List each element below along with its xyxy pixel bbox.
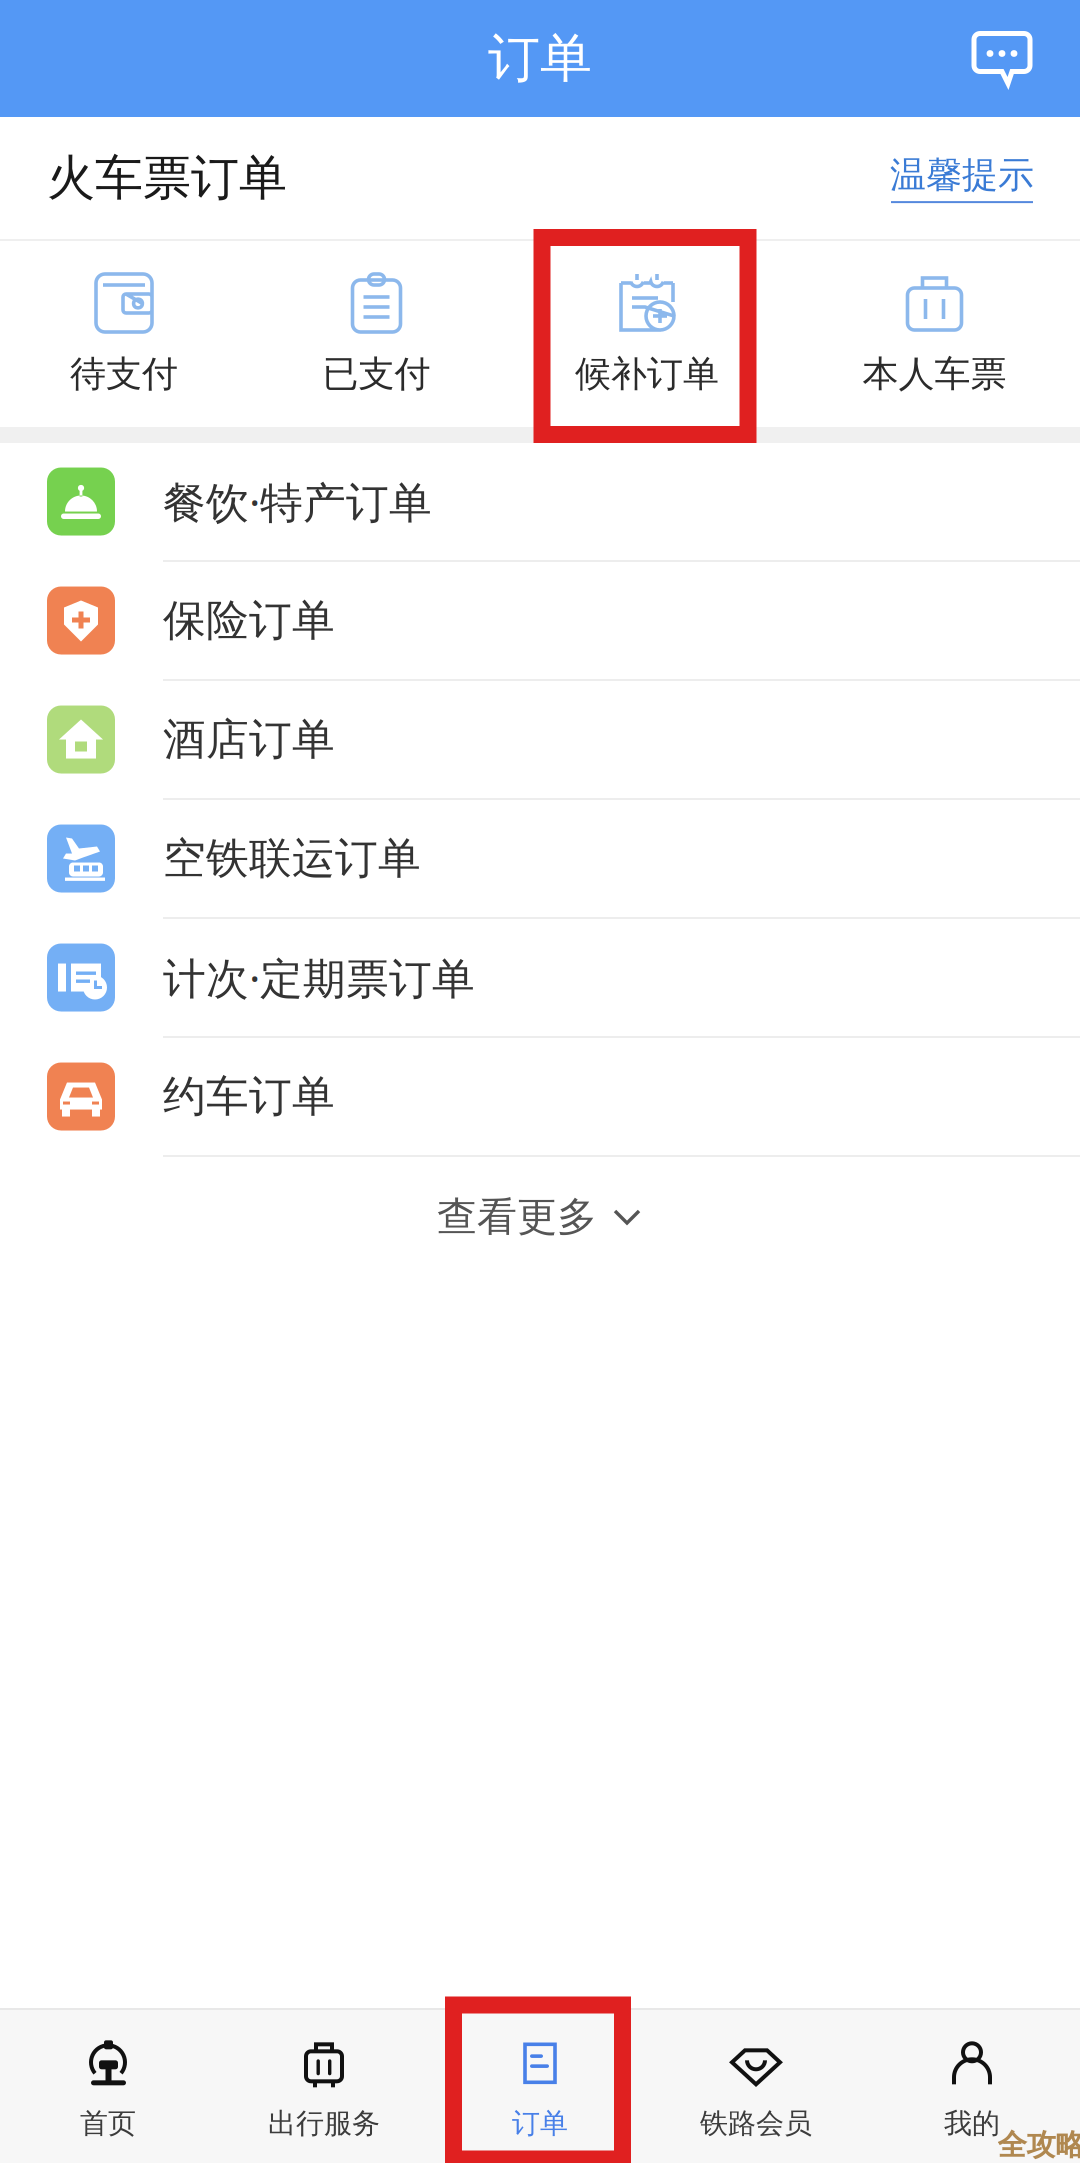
button[interactable]: 查看更多	[0, 1157, 1080, 1277]
button[interactable]: 本人车票	[789, 241, 1080, 427]
staticText: 我的	[944, 2106, 1000, 2141]
staticText: 火车票订单	[47, 148, 287, 207]
button[interactable]: 首页	[0, 2014, 216, 2159]
button[interactable]: 我的	[864, 2014, 1080, 2159]
staticText: 餐饮·特产订单	[163, 473, 432, 530]
staticText: 订单	[512, 2106, 568, 2141]
button[interactable]: 铁路会员	[648, 2014, 864, 2159]
button[interactable]: 保险订单	[0, 562, 1080, 681]
staticText: 约车订单	[163, 1070, 335, 1123]
staticText: 出行服务	[268, 2106, 380, 2141]
staticText: 计次·定期票订单	[163, 949, 475, 1006]
staticText: 已支付	[322, 352, 430, 396]
button[interactable]: 订单	[432, 2014, 648, 2159]
staticText: 酒店订单	[163, 713, 335, 766]
staticText: 查看更多	[437, 1192, 597, 1241]
staticText: 空铁联运订单	[163, 832, 421, 885]
button[interactable]: 约车订单	[0, 1038, 1080, 1157]
button[interactable]: 酒店订单	[0, 681, 1080, 800]
button[interactable]: 餐饮·特产订单	[0, 443, 1080, 562]
staticText: 铁路会员	[700, 2106, 812, 2141]
staticText: 首页	[80, 2106, 136, 2141]
button[interactable]: 候补订单	[505, 241, 789, 427]
button[interactable]: 温馨提示	[890, 153, 1080, 203]
staticText: 本人车票	[862, 352, 1006, 396]
button[interactable]: 待支付	[0, 241, 248, 427]
button[interactable]: 出行服务	[216, 2014, 432, 2159]
button[interactable]: 已支付	[248, 241, 505, 427]
staticText: 候补订单	[575, 352, 719, 396]
button[interactable]: 计次·定期票订单	[0, 919, 1080, 1038]
staticText: 保险订单	[163, 594, 335, 647]
staticText: 待支付	[70, 352, 178, 396]
staticText: 全攻略	[997, 2127, 1080, 2163]
button[interactable]: 在线客服	[968, 27, 1080, 89]
button[interactable]: 空铁联运订单	[0, 800, 1080, 919]
staticText: 温馨提示	[890, 153, 1034, 197]
staticText: 订单	[488, 27, 592, 90]
